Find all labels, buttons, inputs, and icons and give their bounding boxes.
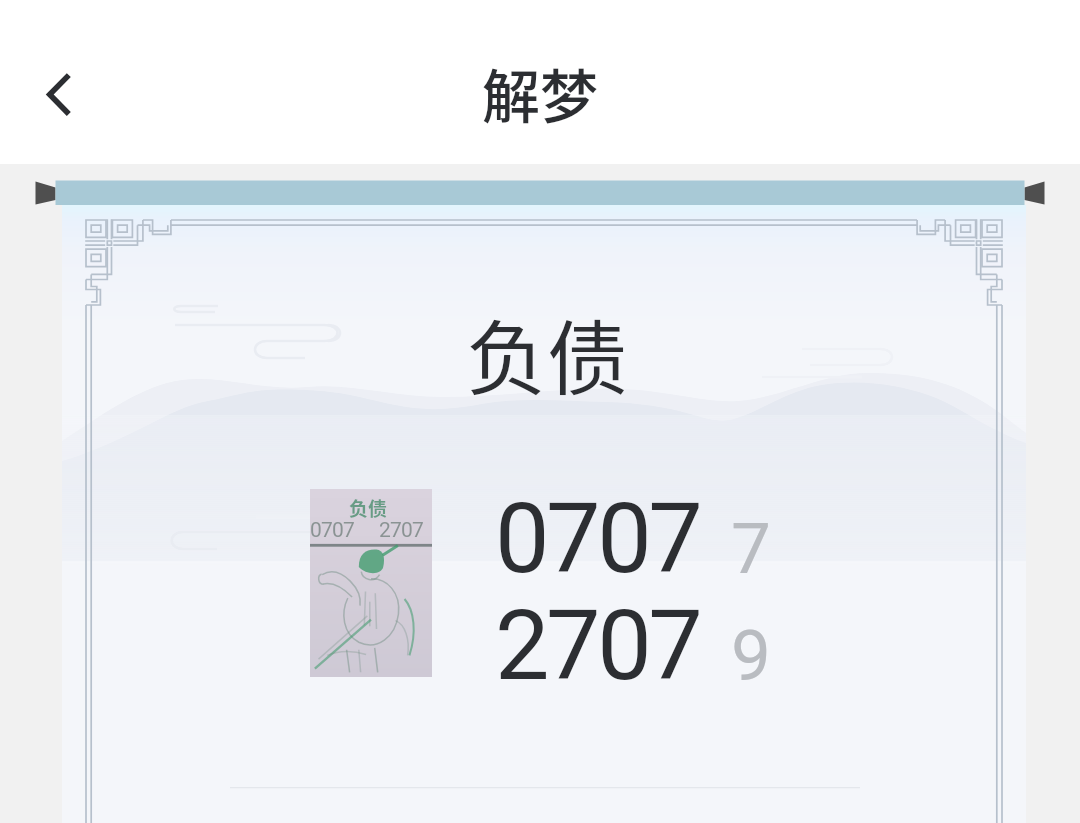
staticText: 0707: [495, 482, 700, 596]
staticText: 负债: [466, 294, 629, 411]
staticText: 7: [731, 507, 771, 590]
staticText: 解梦: [482, 51, 599, 135]
staticText: 9: [731, 614, 771, 697]
staticText: 2707: [379, 518, 424, 543]
staticText: 0707: [310, 518, 355, 543]
staticText: 负债: [349, 494, 388, 522]
staticText: 2707: [495, 589, 700, 703]
button[interactable]: Back: [26, 60, 92, 128]
